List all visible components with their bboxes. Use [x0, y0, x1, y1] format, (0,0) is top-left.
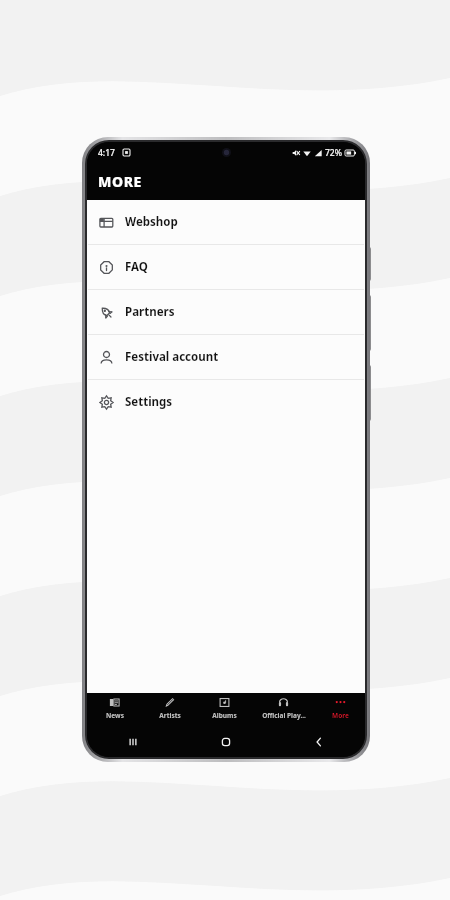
staticText: Festival account [125, 349, 219, 365]
button[interactable]: Webshop [87, 200, 365, 244]
staticText: Official Play... [262, 711, 306, 720]
staticText: Partners [125, 304, 175, 320]
staticText: 4:17 [98, 147, 115, 159]
button[interactable]: Back [272, 727, 365, 757]
staticText: Settings [125, 394, 173, 410]
staticText: Artists [159, 711, 181, 720]
staticText: News [106, 711, 124, 720]
button[interactable]: Settings [87, 380, 365, 424]
button[interactable]: Festival account [87, 335, 365, 379]
staticText: Webshop [125, 214, 178, 230]
staticText: 72% [325, 147, 342, 159]
staticText: Albums [212, 711, 237, 720]
staticText: FAQ [125, 259, 148, 275]
button[interactable]: Albums [197, 693, 252, 727]
button[interactable]: Partners [87, 290, 365, 334]
button[interactable]: More [315, 693, 365, 727]
button[interactable]: Recent apps [87, 727, 179, 757]
button[interactable]: News [87, 693, 142, 727]
button[interactable]: Home [179, 727, 272, 757]
button[interactable]: FAQ [87, 245, 365, 289]
button[interactable]: Official Play... [252, 693, 315, 727]
button[interactable]: Artists [142, 693, 197, 727]
staticText: MORE [98, 172, 142, 191]
staticText: More [332, 711, 349, 720]
